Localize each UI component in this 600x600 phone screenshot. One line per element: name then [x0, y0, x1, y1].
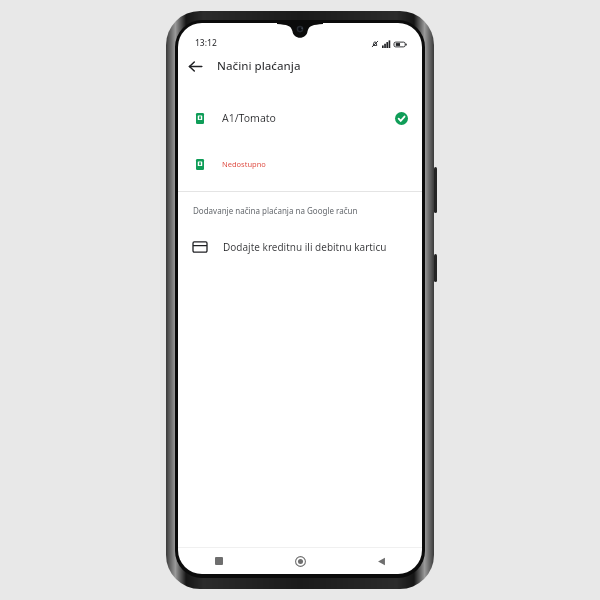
other: Selected — [395, 112, 408, 125]
staticText: Načini plaćanja — [217, 58, 301, 74]
button[interactable]: Recent apps — [178, 548, 260, 574]
button[interactable]: Back — [341, 548, 422, 574]
staticText: A1/Tomato — [222, 111, 276, 125]
staticText: Nedostupno — [222, 159, 266, 169]
button[interactable]: Home — [260, 548, 341, 574]
button[interactable]: Back — [178, 49, 212, 83]
button[interactable]: Dodajte kreditnu ili debitnu karticu — [178, 230, 422, 264]
button[interactable]: A1/Tomato — [178, 103, 422, 133]
staticText: Dodajte kreditnu ili debitnu karticu — [223, 240, 387, 254]
staticText: Dodavanje načina plaćanja na Google raču… — [193, 205, 358, 216]
button[interactable]: Nedostupno — [178, 149, 422, 179]
staticText: 13:12 — [195, 37, 217, 49]
